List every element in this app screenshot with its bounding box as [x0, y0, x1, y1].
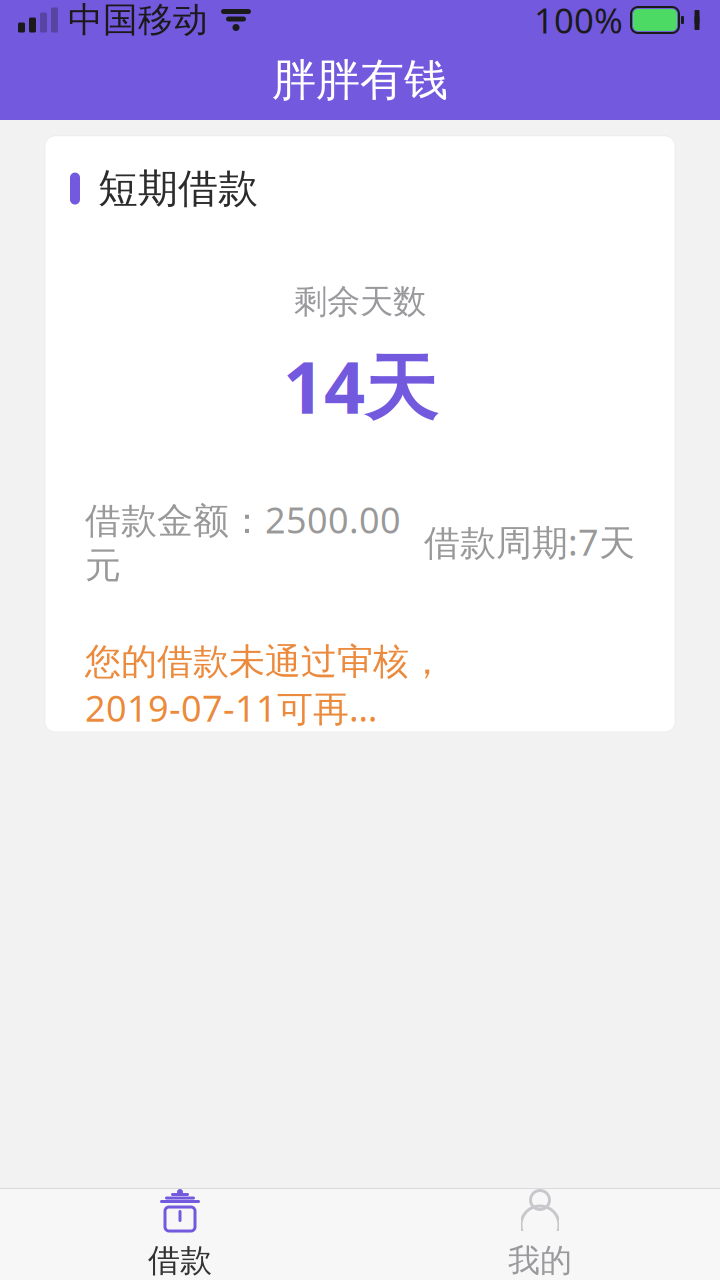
staticText: 短期借款 [98, 164, 258, 213]
staticText: 借款金额：2500.00元 [85, 496, 401, 588]
staticText: 中国移动 [68, 0, 208, 41]
button[interactable]: 借款 [0, 1189, 360, 1280]
staticText: 100% [534, 0, 623, 43]
staticText: 我的 [508, 1241, 572, 1280]
staticText: 14天 [283, 338, 437, 434]
staticText: 剩余天数 [294, 281, 426, 322]
button[interactable]: 我的 [360, 1189, 720, 1280]
staticText: 借款 [148, 1241, 212, 1280]
staticText: 借款周期:7天 [424, 518, 635, 566]
staticText: 胖胖有钱 [272, 53, 448, 107]
staticText: 您的借款未通过审核，2019-07-11可再… [85, 640, 445, 732]
